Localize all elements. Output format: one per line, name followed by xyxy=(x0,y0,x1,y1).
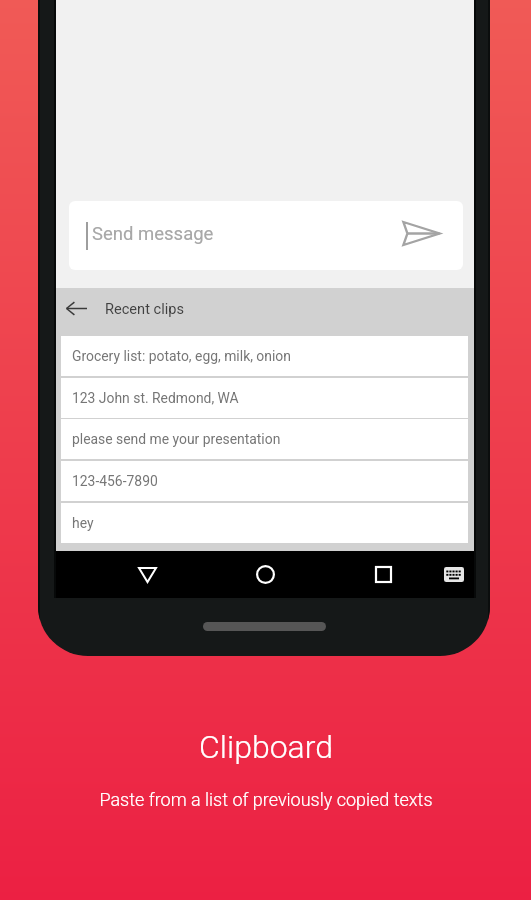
button[interactable]: Back xyxy=(56,288,474,329)
staticText: 123-456-7890 xyxy=(72,473,158,489)
button[interactable]: Keyboard xyxy=(426,551,482,598)
staticText: hey xyxy=(72,515,94,531)
staticText: 123 John st. Redmond, WA xyxy=(72,390,239,406)
button[interactable]: Send xyxy=(400,211,443,255)
staticText: Clipboard xyxy=(199,728,333,766)
button[interactable]: hey xyxy=(61,503,468,543)
button[interactable]: 123 John st. Redmond, WA xyxy=(61,378,468,418)
button[interactable]: Grocery list: potato, egg, milk, onion xyxy=(61,336,468,376)
button[interactable]: Recent apps xyxy=(355,551,411,598)
staticText: Send message xyxy=(92,223,214,245)
staticText: Recent clips xyxy=(105,300,185,317)
button[interactable]: Back xyxy=(119,551,175,598)
button[interactable]: Back xyxy=(56,288,97,329)
button[interactable]: Send message xyxy=(69,201,463,270)
staticText: please send me your presentation xyxy=(72,431,281,447)
button[interactable]: Home xyxy=(237,551,293,598)
staticText: Paste from a list of previously copied t… xyxy=(99,789,433,810)
button[interactable]: please send me your presentation xyxy=(61,419,468,459)
staticText: Grocery list: potato, egg, milk, onion xyxy=(72,348,291,364)
button[interactable]: 123-456-7890 xyxy=(61,461,468,501)
